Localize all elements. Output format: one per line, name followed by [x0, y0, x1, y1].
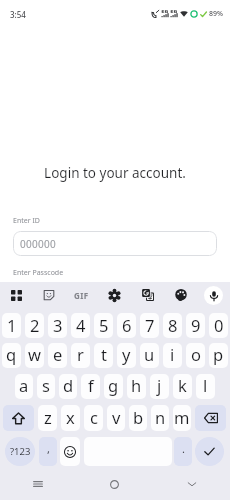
button[interactable]: Stickers	[32, 283, 65, 307]
button[interactable]: v	[107, 405, 125, 431]
staticText: p	[213, 343, 224, 365]
button[interactable]: 0	[209, 313, 228, 338]
button[interactable]: p	[209, 343, 228, 368]
staticText: Enter ID	[13, 216, 40, 226]
button[interactable]: Voice input	[197, 283, 230, 307]
button[interactable]: x	[61, 405, 80, 431]
staticText: 1	[7, 314, 17, 336]
button[interactable]: 8	[163, 313, 182, 338]
button[interactable]: d	[59, 374, 77, 399]
button[interactable]: 2	[25, 313, 44, 338]
button[interactable]: a	[15, 374, 33, 399]
staticText: k	[178, 374, 187, 396]
staticText: 0	[214, 314, 224, 336]
button[interactable]: b	[129, 405, 147, 431]
button[interactable]: Enter	[195, 437, 224, 466]
button[interactable]: Keyboard switcher	[0, 283, 32, 307]
staticText: t	[101, 343, 107, 365]
button[interactable]: 1	[2, 313, 21, 338]
staticText: 3	[53, 314, 63, 336]
staticText: y	[122, 343, 131, 365]
button[interactable]: Shift	[3, 405, 34, 431]
staticText: .	[182, 441, 185, 456]
button[interactable]: Backspace	[195, 405, 226, 431]
button[interactable]: GIF	[65, 283, 98, 307]
button[interactable]: f	[81, 374, 100, 399]
button[interactable]: 9	[186, 313, 205, 338]
button[interactable]: y	[117, 343, 136, 368]
button[interactable]: t	[94, 343, 113, 368]
button[interactable]: 4	[71, 313, 90, 338]
button[interactable]: c	[84, 405, 103, 431]
staticText: w	[28, 343, 41, 365]
button[interactable]: 5	[94, 313, 113, 338]
staticText: m	[174, 406, 190, 428]
button[interactable]: m	[173, 405, 191, 431]
staticText: o	[191, 343, 201, 365]
staticText: 89%	[209, 9, 223, 19]
button[interactable]: 6	[117, 313, 136, 338]
staticText: GIF	[74, 290, 89, 301]
button[interactable]: s	[37, 374, 55, 399]
staticText: z	[44, 406, 52, 428]
staticText: e	[53, 343, 63, 365]
button[interactable]: n	[151, 405, 169, 431]
button[interactable]: q	[2, 343, 21, 368]
button[interactable]: e	[48, 343, 67, 368]
button[interactable]: Themes	[164, 283, 197, 307]
staticText: 9	[191, 314, 201, 336]
staticText: Enter Passcode	[13, 268, 64, 278]
button[interactable]: ,	[39, 437, 57, 466]
staticText: Login to your account.	[0, 164, 230, 182]
button[interactable]: k	[173, 374, 192, 399]
button[interactable]: 000000	[13, 231, 217, 256]
button[interactable]: .	[174, 437, 192, 466]
staticText: f	[88, 374, 94, 396]
button[interactable]: 7	[140, 313, 159, 338]
button[interactable]: w	[25, 343, 44, 368]
staticText: g	[108, 374, 119, 396]
button[interactable]: Translate	[131, 283, 164, 307]
staticText: 4	[76, 314, 86, 336]
staticText: j	[157, 374, 162, 396]
button[interactable]: u	[140, 343, 159, 368]
staticText: i	[170, 343, 175, 365]
button[interactable]: h	[127, 374, 146, 399]
button[interactable]: z	[38, 405, 57, 431]
staticText: u	[144, 343, 155, 365]
button[interactable]: Recents	[0, 468, 76, 500]
staticText: 8	[168, 314, 178, 336]
staticText: 2	[30, 314, 40, 336]
staticText: r	[77, 343, 84, 365]
staticText: ,	[47, 441, 50, 456]
button[interactable]: Emoji	[60, 437, 80, 466]
staticText: c	[90, 406, 98, 428]
staticText: x	[66, 406, 75, 428]
staticText: v	[112, 406, 121, 428]
button[interactable]: i	[163, 343, 182, 368]
staticText: 6	[122, 314, 132, 336]
staticText: 5	[99, 314, 109, 336]
button[interactable]: Settings	[98, 283, 131, 307]
staticText: 3:54	[10, 9, 26, 20]
staticText: l	[203, 374, 208, 396]
staticText: n	[155, 406, 166, 428]
button[interactable]: l	[196, 374, 215, 399]
button[interactable]: j	[150, 374, 169, 399]
staticText: ?123	[10, 445, 31, 458]
button[interactable]: r	[71, 343, 90, 368]
staticText: q	[6, 343, 17, 365]
staticText: d	[63, 374, 74, 396]
button[interactable]: 3	[48, 313, 67, 338]
staticText: s	[42, 374, 50, 396]
staticText: 000000	[20, 237, 57, 251]
button[interactable]: Back	[153, 468, 230, 500]
button[interactable]: o	[186, 343, 205, 368]
button[interactable]: Home	[76, 468, 153, 500]
button[interactable]: g	[104, 374, 123, 399]
staticText: b	[133, 406, 144, 428]
staticText: a	[19, 374, 29, 396]
staticText: 7	[145, 314, 155, 336]
button[interactable]: ?123	[5, 437, 35, 466]
